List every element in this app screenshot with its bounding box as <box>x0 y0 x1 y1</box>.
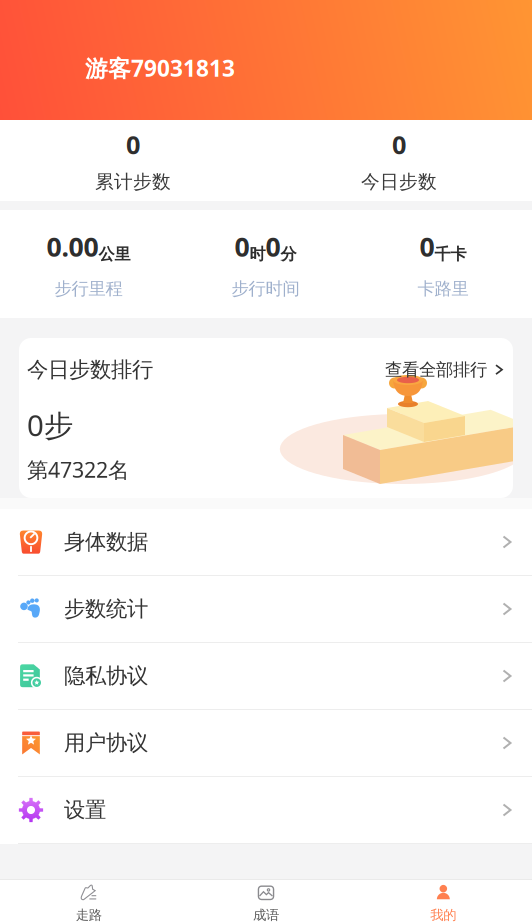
staticText: 走路 <box>76 907 102 923</box>
staticText: 累计步数 <box>95 170 171 193</box>
staticText: 0步 <box>27 405 73 444</box>
staticText: 公里 <box>98 244 130 264</box>
button[interactable]: 用户协议 <box>0 710 532 776</box>
staticText: 今日步数 <box>361 170 437 193</box>
button[interactable]: 身体数据 <box>0 509 532 575</box>
staticText: 0 <box>419 229 434 264</box>
button[interactable]: 走路 <box>0 880 177 924</box>
staticText: 0.00 <box>46 229 98 264</box>
button[interactable]: 设置 <box>0 777 532 843</box>
staticText: 身体数据 <box>64 529 148 555</box>
staticText: 第47322名 <box>27 455 129 483</box>
staticText: 步数统计 <box>64 596 148 622</box>
button[interactable]: 查看全部排行 <box>385 355 505 384</box>
button[interactable]: 我的 <box>355 880 532 924</box>
staticText: 0 <box>126 128 140 161</box>
button[interactable]: 隐私协议 <box>0 643 532 709</box>
staticText: 时 <box>249 244 265 264</box>
staticText: 卡路里 <box>417 278 468 299</box>
staticText: 隐私协议 <box>64 663 148 689</box>
staticText: 0 <box>234 229 249 264</box>
staticText: 设置 <box>64 797 106 823</box>
staticText: 0 <box>392 128 406 161</box>
staticText: 成语 <box>253 907 279 923</box>
staticText: 我的 <box>430 907 456 923</box>
staticText: 用户协议 <box>64 730 148 756</box>
staticText: 0 <box>265 229 280 264</box>
staticText: 步行时间 <box>231 278 299 299</box>
staticText: 游客79031813 <box>85 53 235 83</box>
staticText: 分 <box>280 244 296 264</box>
staticText: 查看全部排行 <box>385 359 487 380</box>
staticText: 千卡 <box>434 244 466 264</box>
staticText: 步行里程 <box>54 278 122 299</box>
staticText: 今日步数排行 <box>27 356 153 383</box>
button[interactable]: 步数统计 <box>0 576 532 642</box>
button[interactable]: 成语 <box>177 880 355 924</box>
